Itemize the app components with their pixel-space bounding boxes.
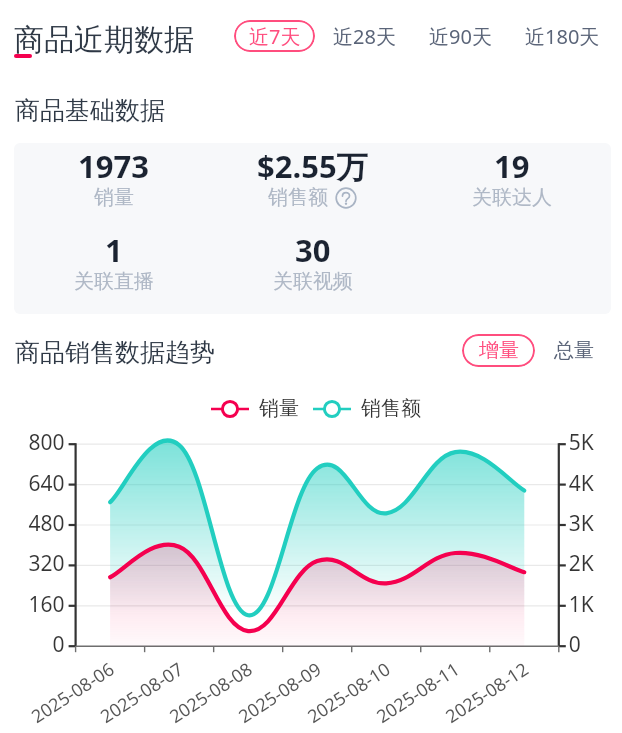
staticText: 销量	[94, 185, 134, 210]
staticText: 近7天	[249, 23, 301, 50]
button[interactable]: 1	[14, 229, 213, 307]
button[interactable]: 商品近期数据	[14, 21, 194, 59]
staticText: 19	[494, 145, 530, 187]
staticText: 近180天	[525, 23, 600, 50]
button[interactable]: 销售额	[313, 396, 421, 421]
button[interactable]: 1973	[14, 145, 213, 223]
staticText: 关联视频	[273, 269, 353, 294]
button[interactable]: 总量	[554, 334, 594, 367]
staticText: 近28天	[333, 23, 396, 50]
button[interactable]: 销量	[211, 396, 299, 421]
staticText: 销量	[259, 396, 299, 421]
button[interactable]: 增量	[462, 334, 535, 367]
staticText: 1973	[78, 145, 149, 187]
staticText: 销售额	[268, 185, 328, 210]
staticText: 销售额	[361, 396, 421, 421]
staticText: $2.55万	[257, 145, 368, 187]
button[interactable]: 近90天	[429, 20, 492, 52]
staticText: 商品基础数据	[15, 95, 165, 126]
staticText: 总量	[554, 338, 594, 363]
staticText: 商品销售数据趋势	[15, 337, 215, 368]
staticText: 30	[295, 229, 331, 271]
staticText: 增量	[479, 338, 519, 363]
staticText: 近90天	[429, 23, 492, 50]
staticText: 商品近期数据	[14, 21, 194, 59]
button[interactable]: 近28天	[333, 20, 396, 52]
button[interactable]: $2.55万	[213, 145, 412, 223]
button[interactable]: 近7天	[234, 20, 315, 52]
staticText: 关联直播	[74, 269, 154, 294]
button[interactable]: 19	[412, 145, 611, 223]
staticText: 关联达人	[472, 185, 552, 210]
staticText: 1	[105, 229, 123, 271]
button[interactable]: 帮助	[335, 187, 357, 209]
button[interactable]: 近180天	[525, 20, 600, 52]
button[interactable]: 30	[213, 229, 412, 307]
